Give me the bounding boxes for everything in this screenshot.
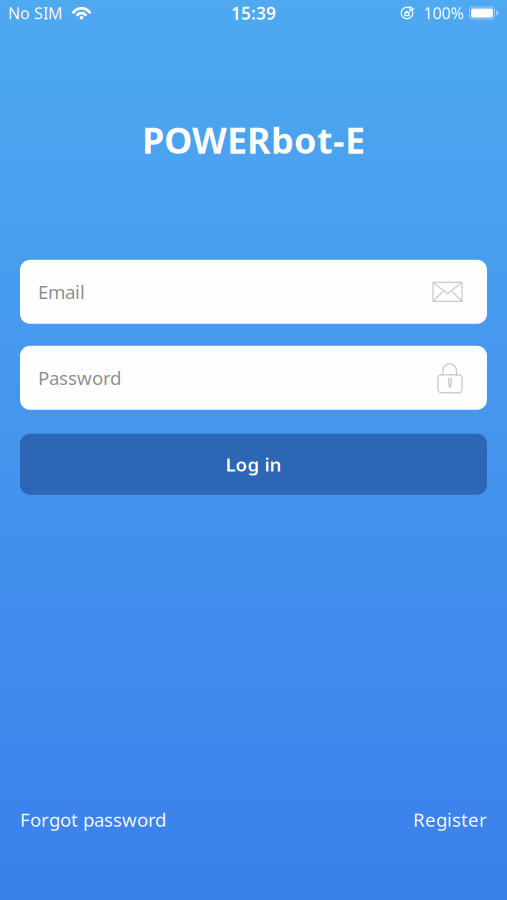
staticText: POWERbot-E	[142, 116, 365, 164]
staticText: Forgot password	[20, 807, 166, 832]
button[interactable]: Password	[20, 346, 487, 410]
button[interactable]: Email	[20, 260, 487, 324]
staticText: Password	[38, 365, 121, 390]
staticText: 15:39	[231, 1, 276, 24]
staticText: Email	[38, 279, 85, 304]
staticText: No SIM	[8, 2, 63, 24]
button[interactable]: Register	[413, 807, 487, 832]
staticText: Register	[413, 807, 487, 832]
staticText: Log in	[225, 452, 281, 477]
button[interactable]: Forgot password	[20, 807, 166, 832]
button[interactable]: Log in	[20, 434, 487, 495]
staticText: 100%	[423, 2, 463, 24]
